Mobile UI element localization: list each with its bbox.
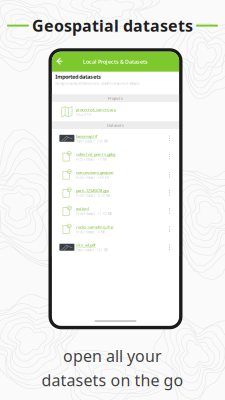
button[interactable]: collected_points.gpkg (52, 147, 179, 165)
staticText: Vector dataset · 4.30 MB (76, 194, 110, 198)
staticText: Vector dataset · 504 KB (76, 176, 109, 179)
button[interactable]: site_a4.pdf (52, 238, 179, 256)
staticText: Vector dataset · 4 MB (76, 230, 105, 234)
staticText: /storage/emulated/0/Android/d…/data/file… (55, 82, 139, 85)
staticText: site_a4.pdf (76, 242, 95, 248)
staticText: Projects (108, 96, 123, 101)
button[interactable]: aoi.kml (52, 202, 179, 220)
button[interactable]: concessions.geojson (52, 165, 179, 184)
staticText: basemap.tif (76, 133, 97, 139)
staticText: Raster dataset · 248 MB (76, 140, 108, 143)
button[interactable]: path-12345678.gpx (52, 184, 179, 202)
staticText: open all your (63, 345, 162, 366)
staticText: Geospatial datasets (32, 15, 193, 36)
staticText: datasets on the go (41, 369, 183, 391)
staticText: path-12345678.gpx (76, 188, 109, 193)
staticText: Vector dataset · 18 MB (76, 158, 107, 161)
staticText: Project file (76, 113, 92, 116)
staticText: protected_sanctuary (76, 107, 116, 112)
button[interactable]: basemap.tif (52, 129, 179, 147)
staticText: rocks_sampling.shp (76, 224, 113, 229)
staticText: aoi.kml (76, 206, 89, 211)
staticText: collected_points.gpkg (76, 152, 115, 157)
staticText: Vector dataset · 11.02 MB (76, 212, 112, 216)
staticText: concessions.geojson (76, 170, 114, 175)
button[interactable]: rocks_sampling.shp (52, 220, 179, 238)
staticText: Imported datasets (55, 73, 101, 80)
button[interactable]: Back (52, 52, 68, 72)
staticText: Datasets (107, 123, 124, 128)
staticText: Raster dataset · 161 MB (76, 248, 108, 252)
staticText: Local Projects & Datasets (83, 58, 148, 65)
button[interactable]: protected_sanctuary (52, 102, 179, 121)
